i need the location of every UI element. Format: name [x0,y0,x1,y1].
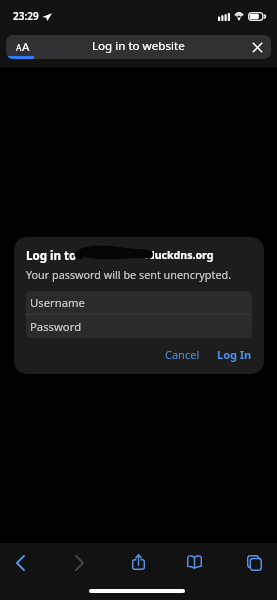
button[interactable]: Forward [61,545,97,581]
staticText: Log in to website [92,38,185,54]
staticText: A [16,42,22,54]
staticText: Your password will be sent unencrypted. [26,267,232,282]
staticText: Log in to [26,248,77,264]
staticText: 23:29 [13,9,39,23]
button[interactable]: Bookmarks [176,544,212,580]
button[interactable]: Share [120,544,156,580]
button[interactable]: Log In [214,345,252,364]
staticText: Cancel [165,347,200,362]
button[interactable]: Username [26,291,252,314]
button[interactable]: Page settings, text size [10,36,36,58]
button[interactable]: Back [2,545,38,581]
button[interactable]: Stop loading [247,37,267,57]
button[interactable]: Log in to website [6,35,271,59]
staticText: Password [30,319,82,334]
staticText: .duckdns.org [145,248,214,262]
button[interactable]: Cancel [160,345,205,364]
staticText: Log In [217,347,252,362]
button[interactable]: Password [26,315,252,338]
staticText: Username [30,295,85,310]
staticText: A [22,39,30,55]
button[interactable]: Tabs [236,545,272,581]
